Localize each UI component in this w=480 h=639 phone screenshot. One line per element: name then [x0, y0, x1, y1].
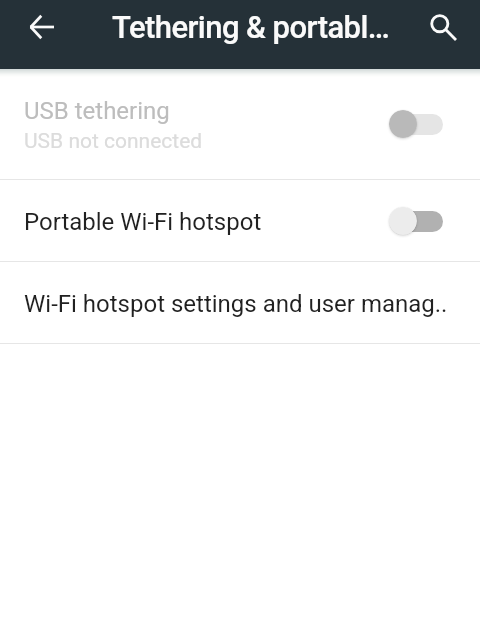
staticText: USB not connected: [24, 129, 203, 154]
button[interactable]: Toggle Portable Wi-Fi hotspot: [389, 204, 443, 238]
button[interactable]: Search: [416, 0, 470, 54]
staticText: Portable Wi-Fi hotspot: [24, 208, 389, 236]
button[interactable]: Toggle USB tethering: [389, 107, 443, 141]
button[interactable]: USB tethering: [0, 69, 480, 179]
staticText: Tethering & portable hotspot: [112, 9, 396, 45]
button[interactable]: Wi-Fi hotspot settings and user manag..: [0, 262, 480, 343]
staticText: Wi-Fi hotspot settings and user manag..: [24, 290, 456, 318]
staticText: USB tethering: [24, 97, 170, 125]
button[interactable]: Navigate up: [10, 0, 74, 54]
button[interactable]: Portable Wi-Fi hotspot: [0, 180, 480, 261]
